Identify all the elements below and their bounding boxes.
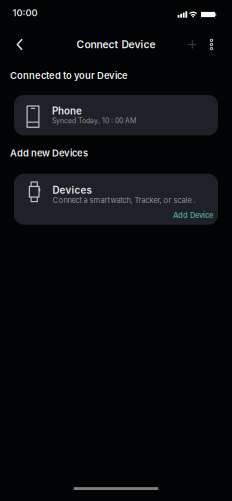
staticText: Add Device [173,211,213,220]
staticText: Devices [52,185,91,196]
staticText: Add new Devices [10,147,88,159]
staticText: Synced Today, 10 : 00 AM [52,116,136,125]
button[interactable] [0,37,22,50]
staticText: 10:00 [12,7,37,18]
staticText: Connected to your Device [10,70,128,81]
staticText: Phone [52,105,82,116]
button[interactable] [188,38,209,49]
button[interactable]: Add Device [173,211,218,225]
staticText: Connect Device [76,38,155,51]
staticText: Connect a smartwatch, Tracker, or scale … [52,196,195,205]
button[interactable]: Phone [14,95,218,135]
button[interactable] [209,36,232,50]
